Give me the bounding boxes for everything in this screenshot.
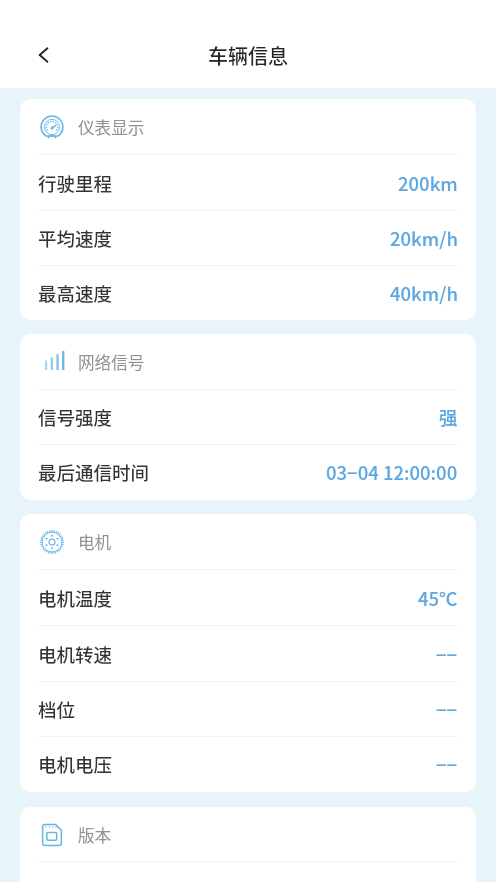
button[interactable]: 档位 — [20, 682, 476, 737]
staticText: 20km/h — [390, 225, 458, 252]
staticText: 电机转速 — [38, 641, 113, 668]
button[interactable]: 电机温度 — [20, 570, 476, 626]
staticText: 车辆信息 — [208, 41, 288, 70]
staticText: 03−04 12:00:00 — [326, 459, 458, 486]
staticText: 45℃ — [418, 585, 458, 612]
staticText: 200km — [398, 170, 458, 197]
staticText: 40km/h — [390, 280, 458, 307]
staticText: 仪表显示 — [78, 115, 145, 139]
staticText: 最后通信时间 — [38, 459, 150, 486]
button[interactable]: 最后通信时间 — [20, 445, 476, 500]
staticText: 平均速度 — [38, 225, 113, 252]
button[interactable]: 电机电压 — [20, 737, 476, 792]
staticText: 行驶里程 — [38, 170, 113, 197]
staticText: 电机电压 — [38, 751, 113, 778]
staticText: 最高速度 — [38, 280, 113, 307]
staticText: −− — [436, 751, 458, 778]
staticText: −− — [436, 641, 458, 668]
staticText: 版本 — [78, 823, 112, 847]
button[interactable]: 平均速度 — [20, 211, 476, 266]
staticText: −− — [436, 696, 458, 723]
staticText: 强 — [439, 404, 458, 431]
button[interactable]: Back — [22, 33, 66, 77]
button[interactable]: 最高速度 — [20, 266, 476, 320]
button[interactable]: 行驶里程 — [20, 155, 476, 211]
button[interactable]: 电机转速 — [20, 626, 476, 682]
staticText: 电机 — [78, 530, 112, 554]
staticText: 网络信号 — [78, 350, 145, 374]
staticText: 档位 — [38, 696, 76, 723]
staticText: 电机温度 — [38, 585, 113, 612]
button[interactable]: 信号强度 — [20, 390, 476, 445]
staticText: 信号强度 — [38, 404, 113, 431]
